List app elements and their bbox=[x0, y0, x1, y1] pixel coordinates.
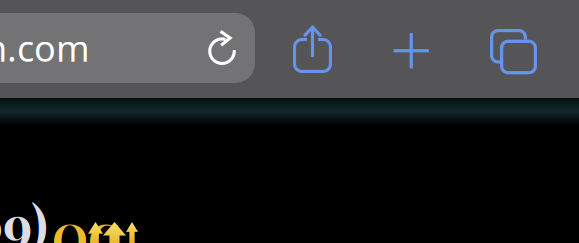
staticText: OC bbox=[52, 208, 120, 243]
staticText: 09) bbox=[0, 187, 48, 243]
button[interactable]: Tabs bbox=[490, 29, 537, 74]
button[interactable]: New Tab bbox=[392, 31, 430, 70]
button[interactable]: Share bbox=[293, 23, 332, 73]
staticText: n.com bbox=[0, 24, 90, 72]
button[interactable]: n.com bbox=[0, 13, 255, 83]
